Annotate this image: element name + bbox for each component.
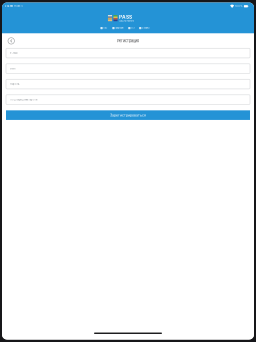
staticText: E-mail xyxy=(10,52,18,55)
staticText: Зарегистрироваться xyxy=(110,113,146,117)
staticText: 100% xyxy=(235,5,242,8)
staticText: 2:36 PM xyxy=(5,5,13,7)
staticText: Подтверждение пароля xyxy=(10,98,37,101)
button[interactable]: Зарегистрироваться xyxy=(6,110,250,120)
staticText: ФИЛИАЛ xyxy=(142,27,149,29)
staticText: ЕГЭ xyxy=(131,27,134,29)
staticText: ГОСТ xyxy=(103,27,107,29)
staticText: СОЗДАЙ АККАУНТ xyxy=(119,20,134,22)
button[interactable]: Закрыть xyxy=(4,34,18,48)
staticText: PASS xyxy=(119,14,132,20)
staticText: Пароль xyxy=(10,83,19,86)
staticText: Fri Dec 4 xyxy=(14,5,22,7)
staticText: Регистрация xyxy=(117,39,139,43)
staticText: Имя xyxy=(10,67,15,70)
staticText: ЛИЦЕНЗИЯ xyxy=(115,27,123,29)
